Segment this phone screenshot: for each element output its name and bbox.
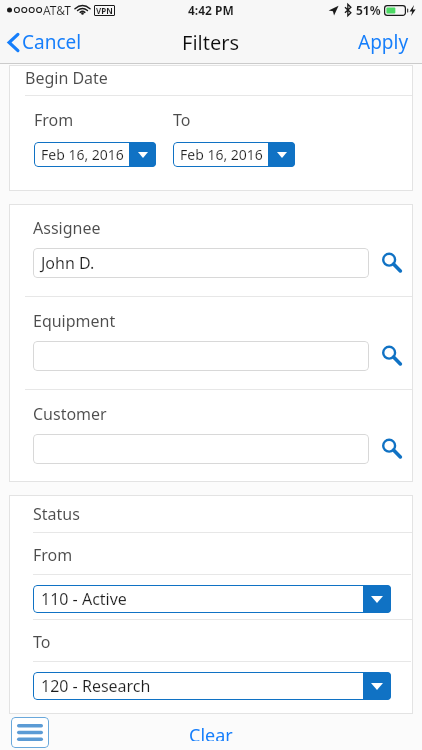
staticText: Status xyxy=(33,503,80,525)
button[interactable]: Search assignee xyxy=(377,248,407,278)
staticText: 110 - Active xyxy=(41,588,127,610)
staticText: From xyxy=(34,109,74,131)
staticText: Begin Date xyxy=(25,67,108,89)
button[interactable]: Cancel xyxy=(0,22,94,62)
staticText: Feb 16, 2016 xyxy=(41,145,124,164)
button[interactable]: 120 - Research xyxy=(33,672,391,700)
staticText: Apply xyxy=(358,29,409,55)
button[interactable] xyxy=(33,434,369,464)
button[interactable]: John D. xyxy=(33,248,369,278)
staticText: From xyxy=(33,544,73,566)
staticText: AT&T xyxy=(43,2,71,18)
button[interactable]: Clear xyxy=(165,714,257,750)
staticText: 51% xyxy=(356,2,381,18)
button[interactable]: 110 - Active xyxy=(33,585,391,613)
staticText: VPN xyxy=(96,5,113,16)
staticText: Filters xyxy=(182,29,240,56)
staticText: Customer xyxy=(33,403,107,425)
staticText: 4:42 PM xyxy=(188,2,234,18)
button[interactable]: Feb 16, 2016 xyxy=(34,142,156,167)
staticText: John D. xyxy=(41,252,95,274)
staticText: Clear xyxy=(189,723,233,741)
staticText: Assignee xyxy=(33,217,101,239)
button[interactable]: Search customer xyxy=(377,434,407,464)
staticText: To xyxy=(173,109,191,131)
button[interactable]: Search equipment xyxy=(377,341,407,371)
button[interactable]: Feb 16, 2016 xyxy=(173,142,295,167)
staticText: To xyxy=(33,631,51,653)
button[interactable] xyxy=(33,341,369,371)
button[interactable]: Menu xyxy=(11,717,49,748)
button[interactable]: Apply xyxy=(345,20,422,64)
staticText: 120 - Research xyxy=(41,675,151,697)
staticText: Cancel xyxy=(22,29,82,55)
staticText: Equipment xyxy=(33,310,116,332)
staticText: Feb 16, 2016 xyxy=(180,145,263,164)
